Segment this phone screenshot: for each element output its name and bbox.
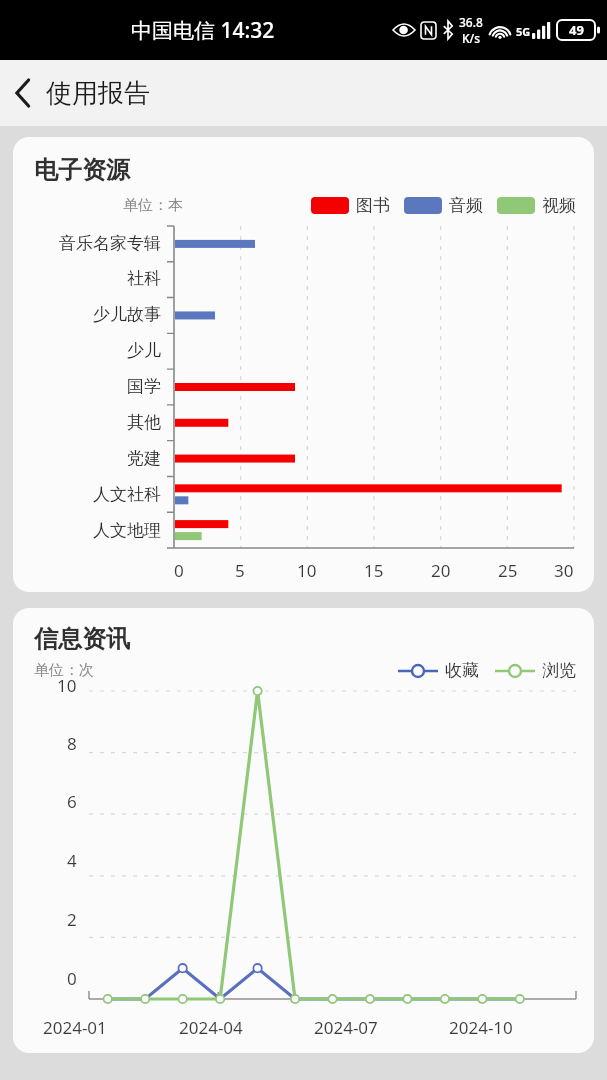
staticText: 单位：本 — [123, 196, 183, 215]
staticText: 20 — [431, 559, 451, 582]
staticText: 25 — [498, 559, 518, 582]
staticText: 49 — [569, 21, 584, 39]
staticText: 音乐名家专辑 — [59, 233, 161, 254]
button[interactable]: 电子资源 — [13, 137, 594, 592]
staticText: 中国电信 14:32 — [131, 16, 275, 45]
staticText: 4 — [67, 849, 77, 872]
staticText: 社科 — [127, 268, 161, 289]
staticText: 其他 — [127, 412, 161, 433]
staticText: 浏览 — [542, 660, 576, 681]
staticText: 30 — [554, 559, 574, 582]
staticText: 2024-07 — [314, 1016, 378, 1039]
staticText: 音频 — [449, 195, 483, 216]
staticText: 人文社科 — [93, 484, 161, 505]
staticText: 6 — [67, 790, 77, 813]
staticText: 视频 — [542, 195, 576, 216]
staticText: 8 — [67, 732, 77, 755]
staticText: 党建 — [127, 448, 161, 469]
staticText: 图书 — [356, 195, 390, 216]
staticText: 使用报告 — [46, 77, 150, 110]
staticText: 2 — [67, 908, 77, 931]
staticText: 2024-04 — [179, 1016, 243, 1039]
staticText: 15 — [364, 559, 384, 582]
staticText: 0 — [67, 967, 77, 990]
staticText: K/s — [462, 30, 481, 46]
staticText: 2024-10 — [449, 1016, 513, 1039]
staticText: 国学 — [127, 376, 161, 397]
staticText: 0 — [174, 559, 184, 582]
staticText: 少儿故事 — [93, 304, 161, 325]
staticText: 10 — [57, 674, 77, 697]
button[interactable]: 信息资讯 — [13, 608, 594, 1053]
staticText: 人文地理 — [93, 520, 161, 541]
staticText: 少儿 — [127, 340, 161, 361]
staticText: 5G — [516, 24, 531, 39]
button[interactable]: Back — [0, 70, 46, 116]
staticText: 10 — [297, 559, 317, 582]
staticText: 电子资源 — [34, 155, 130, 185]
staticText: 36.8 — [459, 14, 483, 30]
staticText: 5 — [235, 559, 245, 582]
staticText: 2024-01 — [43, 1016, 107, 1039]
staticText: 收藏 — [445, 660, 479, 681]
staticText: 单位：次 — [34, 661, 94, 680]
staticText: 信息资讯 — [34, 624, 130, 654]
